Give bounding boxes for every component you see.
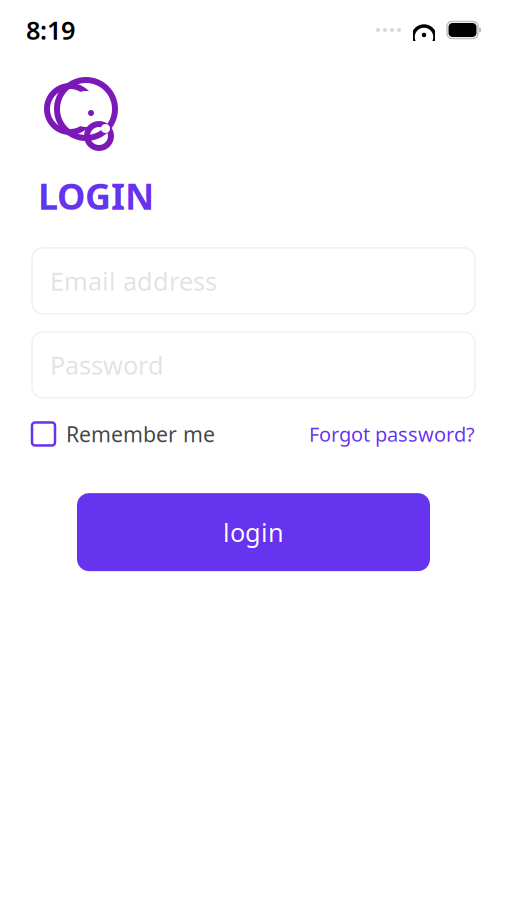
staticText: 8:19 — [26, 13, 75, 47]
staticText: LOGIN — [38, 172, 154, 220]
staticText: login — [223, 515, 284, 549]
staticText: Forgot password? — [309, 421, 475, 447]
staticText: Email address — [50, 264, 217, 298]
button[interactable]: login — [77, 493, 430, 571]
button[interactable]: Remember me — [32, 420, 215, 448]
button[interactable]: Forgot password? — [309, 421, 475, 447]
staticText: Password — [50, 348, 164, 382]
staticText: Remember me — [66, 420, 215, 448]
